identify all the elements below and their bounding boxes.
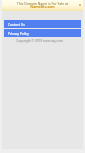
staticText: Privacy Policy: [8, 31, 29, 35]
staticText: Copyright © 2018 mossing.com: [0, 39, 80, 43]
button[interactable]: Privacy Policy: [4, 29, 81, 37]
button[interactable]: Contact Us: [4, 20, 81, 28]
staticText: NameSilo.com: [2, 4, 83, 9]
button[interactable]: Close banner: [78, 3, 82, 7]
staticText: Contact Us: [8, 22, 25, 26]
staticText: This Domain Name is For Sale at: [2, 1, 83, 6]
